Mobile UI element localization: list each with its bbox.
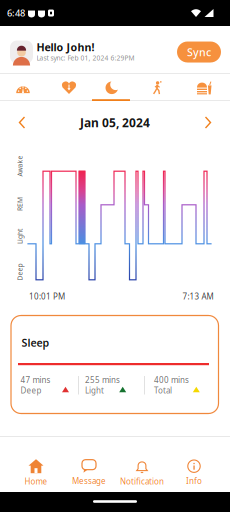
staticText: 255 mins [85, 375, 120, 385]
staticText: 10:01 PM [29, 291, 65, 302]
staticText: 400 mins [154, 375, 189, 385]
staticText: Hello John! [36, 40, 94, 54]
staticText: REM [13, 200, 27, 208]
button[interactable]: Stress [1, 74, 45, 101]
button[interactable]: Nutrition [182, 74, 226, 101]
staticText: Jan 05, 2024 [80, 114, 150, 130]
button[interactable]: Sync [177, 41, 221, 62]
staticText: Info [186, 476, 202, 486]
staticText: Last sync: Feb 01, 2024 6:29PM [36, 54, 134, 62]
staticText: 6:48 [7, 7, 25, 19]
staticText: Sleep [21, 335, 49, 350]
button[interactable]: Notification [120, 459, 164, 487]
staticText: Message [72, 476, 106, 486]
button[interactable]: Info [186, 460, 202, 486]
staticText: Light [85, 385, 104, 396]
staticText: Sync [187, 45, 211, 59]
staticText: Notification [120, 476, 164, 487]
button[interactable]: Heart [47, 74, 91, 101]
button[interactable]: Sleep [90, 74, 134, 101]
staticText: Total [154, 385, 172, 396]
button[interactable]: Home [24, 459, 47, 487]
staticText: Deep [20, 385, 41, 396]
staticText: Deep [11, 268, 28, 276]
staticText: Light [12, 232, 27, 241]
staticText: Home [24, 476, 47, 487]
staticText: 7:13 AM [182, 291, 213, 302]
button[interactable]: Message [72, 460, 106, 486]
button[interactable]: Previous day [10, 110, 34, 134]
button[interactable]: Next day [196, 110, 220, 134]
button[interactable]: Activity [135, 74, 179, 101]
staticText: Awake [9, 162, 30, 170]
staticText: 47 mins [20, 375, 50, 385]
